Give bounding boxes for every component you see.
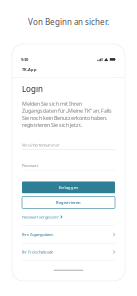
button[interactable]: Passwort vergessen? — [22, 208, 115, 225]
button[interactable]: Ihr Freischaltcode — [22, 243, 115, 260]
button[interactable]: Registrieren — [22, 196, 115, 208]
button[interactable]: Einloggen — [22, 181, 115, 193]
staticText: Von Beginn an sicher. — [28, 17, 109, 27]
staticText: Registrieren — [56, 200, 81, 205]
staticText: Login — [22, 83, 43, 94]
staticText: TK-App — [22, 67, 37, 72]
staticText: Melden Sie sich mit Ihren Zugangsdaten f… — [22, 100, 112, 128]
staticText: Passwort — [22, 163, 38, 168]
button[interactable]: Ihre Zugangsdaten — [22, 225, 115, 243]
staticText: 9:30 — [21, 57, 28, 62]
staticText: Einloggen — [58, 185, 78, 190]
staticText: Ihre Zugangsdaten — [22, 232, 53, 237]
staticText: Versichertennummer — [22, 142, 60, 148]
staticText: Passwort vergessen? — [22, 214, 59, 220]
staticText: Ihr Freischaltcode — [22, 249, 53, 255]
